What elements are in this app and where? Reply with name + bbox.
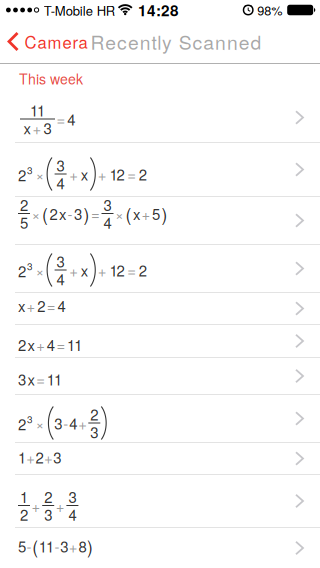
staticText: 2: [44, 488, 52, 505]
staticText: ): [87, 536, 93, 556]
staticText: 2: [49, 205, 57, 222]
staticText: ×: [36, 165, 45, 182]
button[interactable]: 1: [0, 443, 320, 474]
staticText: 4: [67, 110, 75, 127]
staticText: x: [59, 205, 66, 222]
staticText: x: [81, 165, 88, 182]
button[interactable]: 2 3: [0, 245, 320, 292]
staticText: =: [127, 261, 136, 278]
staticText: +: [141, 205, 150, 222]
staticText: ): [161, 203, 167, 224]
staticText: 3: [57, 253, 65, 270]
staticText: 4: [57, 174, 65, 191]
staticText: 3: [57, 157, 65, 174]
staticText: ×: [35, 414, 44, 431]
staticText: 4: [68, 506, 76, 523]
button[interactable]: 3: [0, 358, 320, 394]
staticText: x: [28, 370, 35, 387]
staticText: (: [125, 203, 131, 224]
staticText: 4: [47, 336, 55, 353]
staticText: +: [69, 537, 78, 554]
staticText: 4: [103, 214, 111, 231]
staticText: 4: [57, 270, 65, 287]
staticText: Camera: [24, 30, 87, 53]
staticText: 3: [90, 423, 98, 440]
staticText: 2 3: [18, 412, 33, 434]
staticText: x: [133, 205, 140, 222]
staticText: -: [27, 537, 32, 554]
button[interactable]: x: [0, 293, 320, 324]
staticText: 2: [36, 448, 44, 465]
staticText: 2: [90, 406, 98, 423]
staticText: 4: [69, 414, 77, 431]
staticText: 2 3: [18, 163, 33, 185]
button[interactable]: 2: [0, 197, 320, 244]
staticText: =: [91, 205, 100, 222]
staticText: 3: [53, 448, 61, 465]
staticText: Recently Scanned: [90, 28, 261, 55]
staticText: 3: [44, 506, 52, 523]
staticText: 3: [54, 414, 62, 431]
staticText: 5: [18, 537, 26, 554]
button[interactable]: 2 3: [0, 143, 320, 196]
staticText: +: [44, 448, 53, 465]
staticText: +: [78, 414, 87, 431]
staticText: +: [56, 497, 65, 514]
button[interactable]: 5: [0, 528, 320, 568]
staticText: 2: [139, 261, 147, 278]
staticText: 1: [18, 448, 26, 465]
button[interactable]: Camera: [0, 30, 87, 53]
button[interactable]: 1: [0, 475, 320, 527]
staticText: =: [57, 110, 66, 127]
staticText: 3: [60, 537, 68, 554]
staticText: 3: [74, 205, 82, 222]
staticText: x: [81, 261, 88, 278]
staticText: 5: [20, 214, 28, 231]
staticText: 3: [103, 196, 111, 213]
staticText: 11: [39, 537, 54, 554]
staticText: 14:28: [138, 0, 179, 20]
staticText: 5: [152, 205, 160, 222]
staticText: 4: [57, 297, 65, 314]
staticText: 2: [139, 165, 147, 182]
button[interactable]: 2: [0, 325, 320, 357]
staticText: 2: [20, 196, 28, 213]
staticText: 8: [78, 537, 86, 554]
staticText: +: [36, 336, 45, 353]
staticText: -: [63, 414, 68, 431]
button[interactable]: 11: [0, 93, 320, 142]
staticText: This week: [19, 69, 83, 88]
staticText: 3: [68, 488, 76, 505]
staticText: +: [26, 448, 35, 465]
staticText: 2: [20, 506, 28, 523]
button[interactable]: 2 3: [0, 395, 320, 442]
staticText: T-Mobile HR: [44, 1, 115, 19]
staticText: +: [98, 261, 107, 278]
staticText: =: [36, 370, 45, 387]
staticText: 98%: [257, 1, 282, 19]
staticText: 11: [67, 336, 82, 353]
staticText: +: [69, 261, 78, 278]
staticText: +: [69, 165, 78, 182]
staticText: (: [42, 203, 48, 224]
staticText: x: [28, 336, 35, 353]
staticText: -: [55, 537, 60, 554]
staticText: +: [32, 497, 41, 514]
staticText: ×: [115, 205, 124, 222]
staticText: 12: [109, 261, 125, 278]
staticText: 1: [20, 488, 28, 505]
staticText: x: [23, 119, 30, 136]
staticText: 11: [47, 370, 62, 387]
staticText: 3: [18, 370, 26, 387]
staticText: 12: [109, 165, 125, 182]
staticText: +: [27, 297, 36, 314]
staticText: x: [18, 297, 25, 314]
staticText: 11: [30, 102, 45, 119]
staticText: =: [47, 297, 56, 314]
staticText: 2: [37, 297, 45, 314]
staticText: ×: [31, 205, 40, 222]
staticText: ×: [36, 261, 45, 278]
staticText: 2 3: [18, 259, 33, 281]
staticText: +: [32, 119, 41, 136]
staticText: 2: [18, 336, 26, 353]
